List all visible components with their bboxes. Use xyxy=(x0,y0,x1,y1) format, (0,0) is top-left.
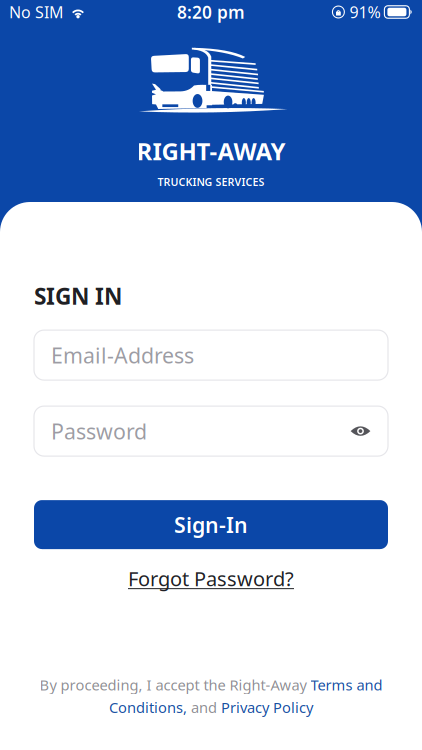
button[interactable]: Show password xyxy=(342,423,371,440)
staticText: and xyxy=(187,697,221,717)
staticText: No SIM xyxy=(9,1,64,23)
button[interactable]: Sign-In xyxy=(34,500,388,549)
staticText: SIGN IN xyxy=(34,281,122,311)
button[interactable]: Forgot Password? xyxy=(34,565,388,592)
staticText: Email-Address xyxy=(51,341,194,369)
staticText: 91% xyxy=(349,1,380,23)
staticText: Terms and xyxy=(310,675,382,694)
staticText: Privacy Policy xyxy=(221,697,313,717)
button[interactable]: Conditions, xyxy=(109,697,187,717)
staticText: Conditions, xyxy=(109,697,187,717)
button[interactable]: Terms and xyxy=(310,675,382,694)
staticText: TRUCKING SERVICES xyxy=(157,175,264,189)
staticText: Sign-In xyxy=(174,510,248,539)
staticText: 8:20 pm xyxy=(177,0,245,23)
staticText: RIGHT-AWAY xyxy=(136,135,285,167)
staticText: By proceeding, I accept the Right-Away xyxy=(39,675,310,694)
button[interactable]: Privacy Policy xyxy=(221,697,313,717)
staticText: Forgot Password? xyxy=(128,565,294,592)
staticText: Password xyxy=(51,417,147,445)
